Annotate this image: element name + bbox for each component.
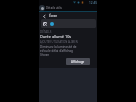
staticText: Détails utilis [46, 6, 62, 10]
staticText: l'écran [40, 53, 50, 57]
staticText: et/ou le délai d'affichag [40, 49, 73, 53]
button[interactable]: Détails utilis [39, 5, 97, 11]
staticText: Diminuez la luminosité de [40, 45, 77, 49]
staticText: DÉTAILS [40, 30, 52, 34]
staticText: Durée allumé 10s [40, 34, 72, 39]
staticText: AJOUTER UTILISATION ALIMEN [40, 40, 78, 44]
button[interactable] [41, 19, 96, 28]
button[interactable]: Affichage [66, 58, 90, 65]
staticText: Affichage [71, 60, 85, 64]
staticText: 12:45 [89, 1, 98, 5]
staticText: Écran [49, 14, 58, 18]
button[interactable]: AJOUTER UTILISATION ALIMEN [40, 40, 78, 44]
button[interactable]: Back [42, 13, 97, 19]
other: Back [42, 14, 46, 18]
